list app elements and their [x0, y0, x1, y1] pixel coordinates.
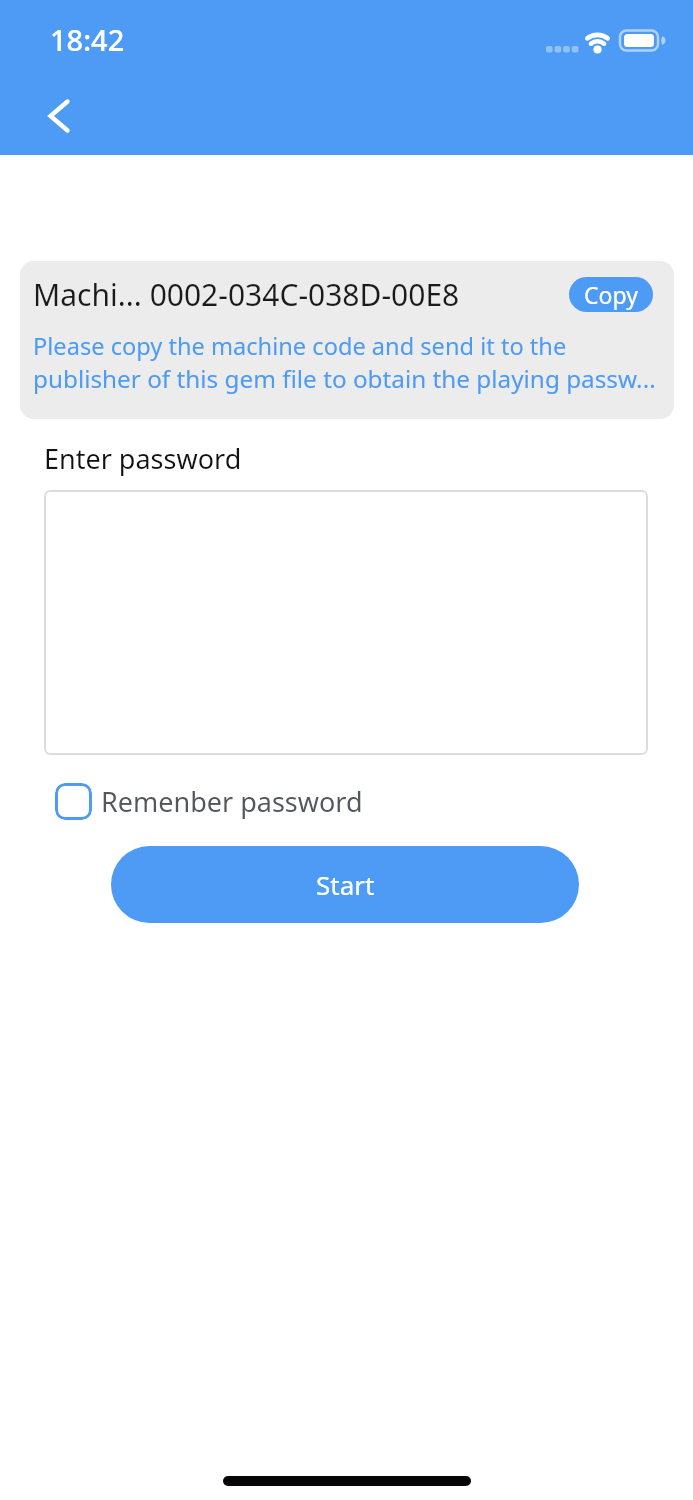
- staticText: Please copy the machine code and send it…: [33, 330, 567, 362]
- button[interactable]: [36, 88, 82, 144]
- button[interactable]: Start: [111, 846, 579, 923]
- button[interactable]: Copy: [569, 277, 653, 312]
- staticText: publisher of this gem file to obtain the…: [33, 362, 656, 395]
- button[interactable]: [44, 490, 648, 755]
- button[interactable]: Remenber password: [55, 783, 363, 820]
- staticText: Start: [316, 867, 375, 902]
- staticText: Copy: [584, 279, 638, 310]
- staticText: Enter password: [44, 440, 242, 477]
- staticText: Machi... 0002-034C-038D-00E8: [33, 274, 460, 315]
- staticText: Remenber password: [101, 783, 363, 820]
- staticText: 18:42: [50, 20, 125, 59]
